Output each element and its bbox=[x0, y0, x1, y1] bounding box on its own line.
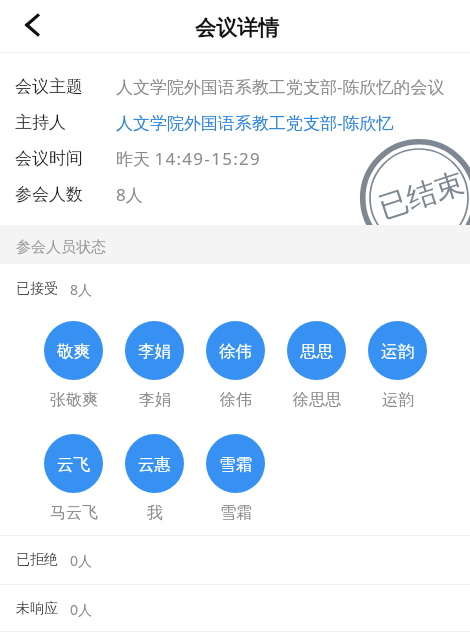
button[interactable]: 未响应 bbox=[0, 584, 470, 634]
button[interactable]: 云飞 bbox=[44, 434, 103, 493]
staticText: 思思 bbox=[300, 341, 333, 362]
staticText: 运韵 bbox=[382, 390, 414, 410]
staticText: 8人 bbox=[70, 280, 93, 299]
button[interactable]: 思思 bbox=[287, 321, 346, 380]
staticText: 会议主题 bbox=[15, 76, 83, 97]
staticText: 徐思思 bbox=[293, 390, 341, 410]
staticText: 徐伟 bbox=[219, 341, 252, 362]
button[interactable]: 徐伟 bbox=[206, 321, 265, 380]
staticText: 李娟 bbox=[138, 341, 171, 362]
staticText: 会议详情 bbox=[195, 15, 279, 41]
button[interactable]: Back bbox=[11, 3, 55, 47]
button[interactable]: 雪霜 bbox=[206, 434, 265, 493]
staticText: 马云飞 bbox=[50, 503, 98, 523]
staticText: 参会人数 bbox=[15, 184, 83, 205]
staticText: 8人 bbox=[116, 183, 143, 206]
staticText: 徐伟 bbox=[220, 390, 252, 410]
staticText: 未响应 bbox=[16, 600, 58, 618]
staticText: 运韵 bbox=[381, 341, 414, 362]
staticText: 0人 bbox=[70, 600, 93, 619]
staticText: 参会人员状态 bbox=[16, 238, 106, 257]
staticText: 已拒绝 bbox=[16, 551, 58, 569]
staticText: 0人 bbox=[70, 551, 93, 570]
staticText: 雪霜 bbox=[219, 454, 252, 475]
button[interactable]: 云惠 bbox=[125, 434, 184, 493]
button[interactable]: 已接受 bbox=[0, 264, 470, 314]
button[interactable]: 敬爽 bbox=[44, 321, 103, 380]
staticText: 已接受 bbox=[16, 280, 58, 298]
staticText: 我 bbox=[147, 503, 163, 523]
button[interactable]: 运韵 bbox=[368, 321, 427, 380]
staticText: 雪霜 bbox=[220, 503, 252, 523]
staticText: 云飞 bbox=[57, 454, 90, 475]
staticText: 已结束 bbox=[374, 164, 469, 227]
staticText: 昨天 14:49-15:29 bbox=[116, 147, 262, 170]
button[interactable]: 已拒绝 bbox=[0, 535, 470, 585]
staticText: 人文学院外国语系教工党支部-陈欣忆 bbox=[116, 111, 394, 134]
staticText: 云惠 bbox=[138, 454, 171, 475]
staticText: 敬爽 bbox=[57, 341, 90, 362]
staticText: 张敬爽 bbox=[50, 390, 98, 410]
staticText: 李娟 bbox=[139, 390, 171, 410]
staticText: 人文学院外国语系教工党支部-陈欣忆的会议 bbox=[116, 75, 445, 98]
staticText: 主持人 bbox=[15, 112, 66, 133]
button[interactable]: 李娟 bbox=[125, 321, 184, 380]
staticText: 会议时间 bbox=[15, 148, 83, 169]
